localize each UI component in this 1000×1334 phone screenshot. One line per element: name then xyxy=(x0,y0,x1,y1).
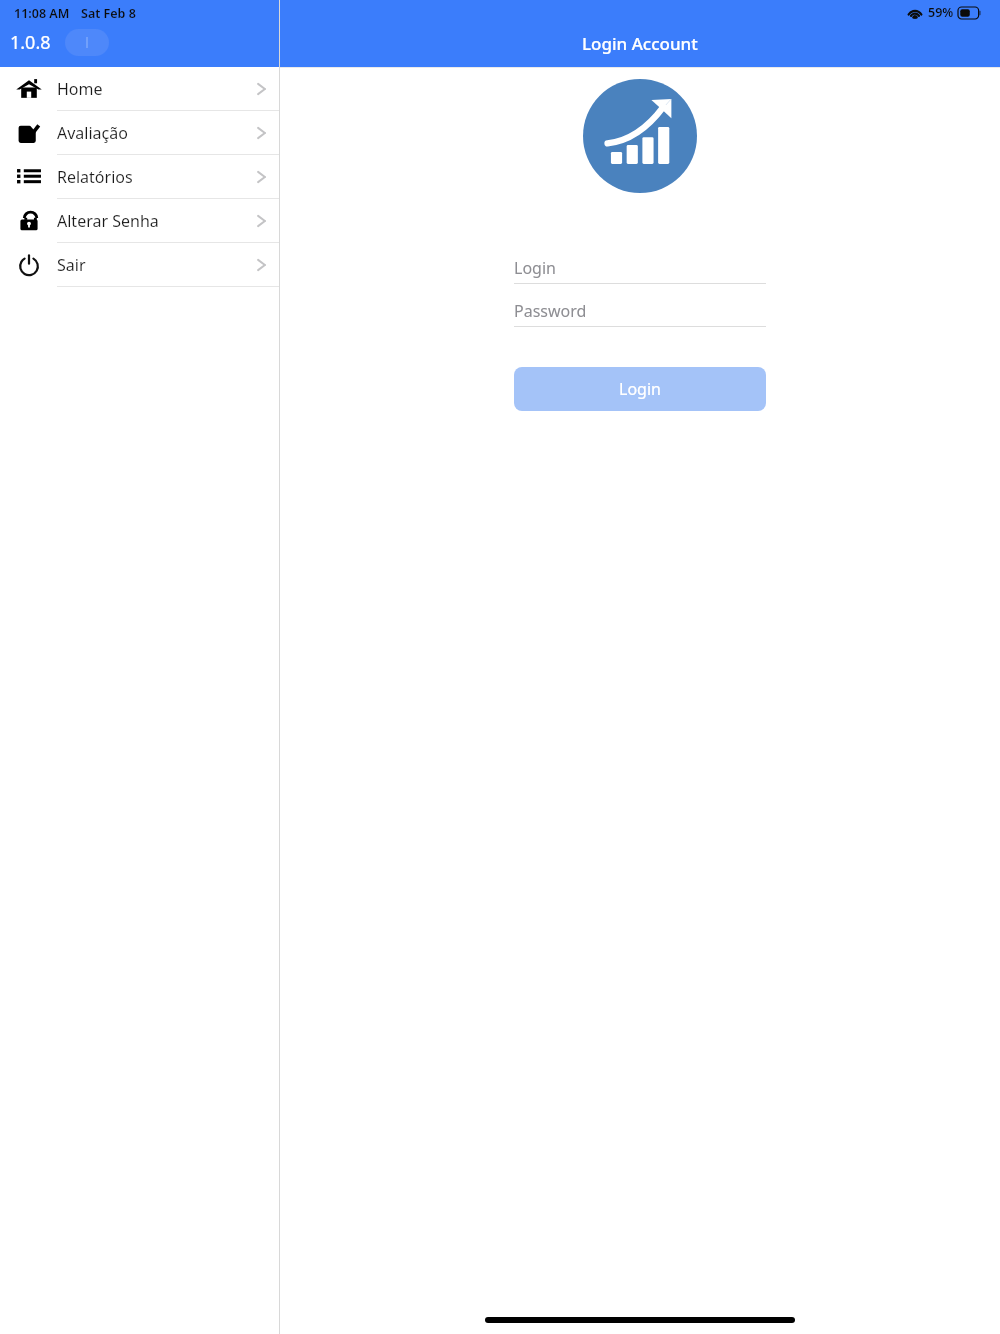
staticText: 59% xyxy=(928,4,954,21)
staticText: Login xyxy=(514,257,556,279)
staticText: Alterar Senha xyxy=(57,210,159,232)
staticText: Sat Feb 8 xyxy=(81,5,136,22)
button[interactable]: Home xyxy=(0,67,279,110)
staticText: Relatórios xyxy=(57,166,133,188)
button[interactable]: Sair xyxy=(0,243,279,286)
button[interactable]: Toggle xyxy=(65,29,109,56)
staticText: 11:08 AM xyxy=(14,5,70,22)
button[interactable]: Login xyxy=(514,253,766,284)
staticText: Login Account xyxy=(582,32,698,55)
staticText: Sair xyxy=(57,254,86,276)
button[interactable]: Password xyxy=(514,296,766,327)
staticText: 1.0.8 xyxy=(10,30,51,55)
button[interactable]: Relatórios xyxy=(0,155,279,198)
staticText: Password xyxy=(514,300,587,322)
staticText: Login xyxy=(619,378,661,400)
button[interactable]: Avaliação xyxy=(0,111,279,154)
button[interactable]: Login xyxy=(514,367,766,411)
button[interactable]: Alterar Senha xyxy=(0,199,279,242)
staticText: Avaliação xyxy=(57,122,128,144)
staticText: Home xyxy=(57,78,103,100)
